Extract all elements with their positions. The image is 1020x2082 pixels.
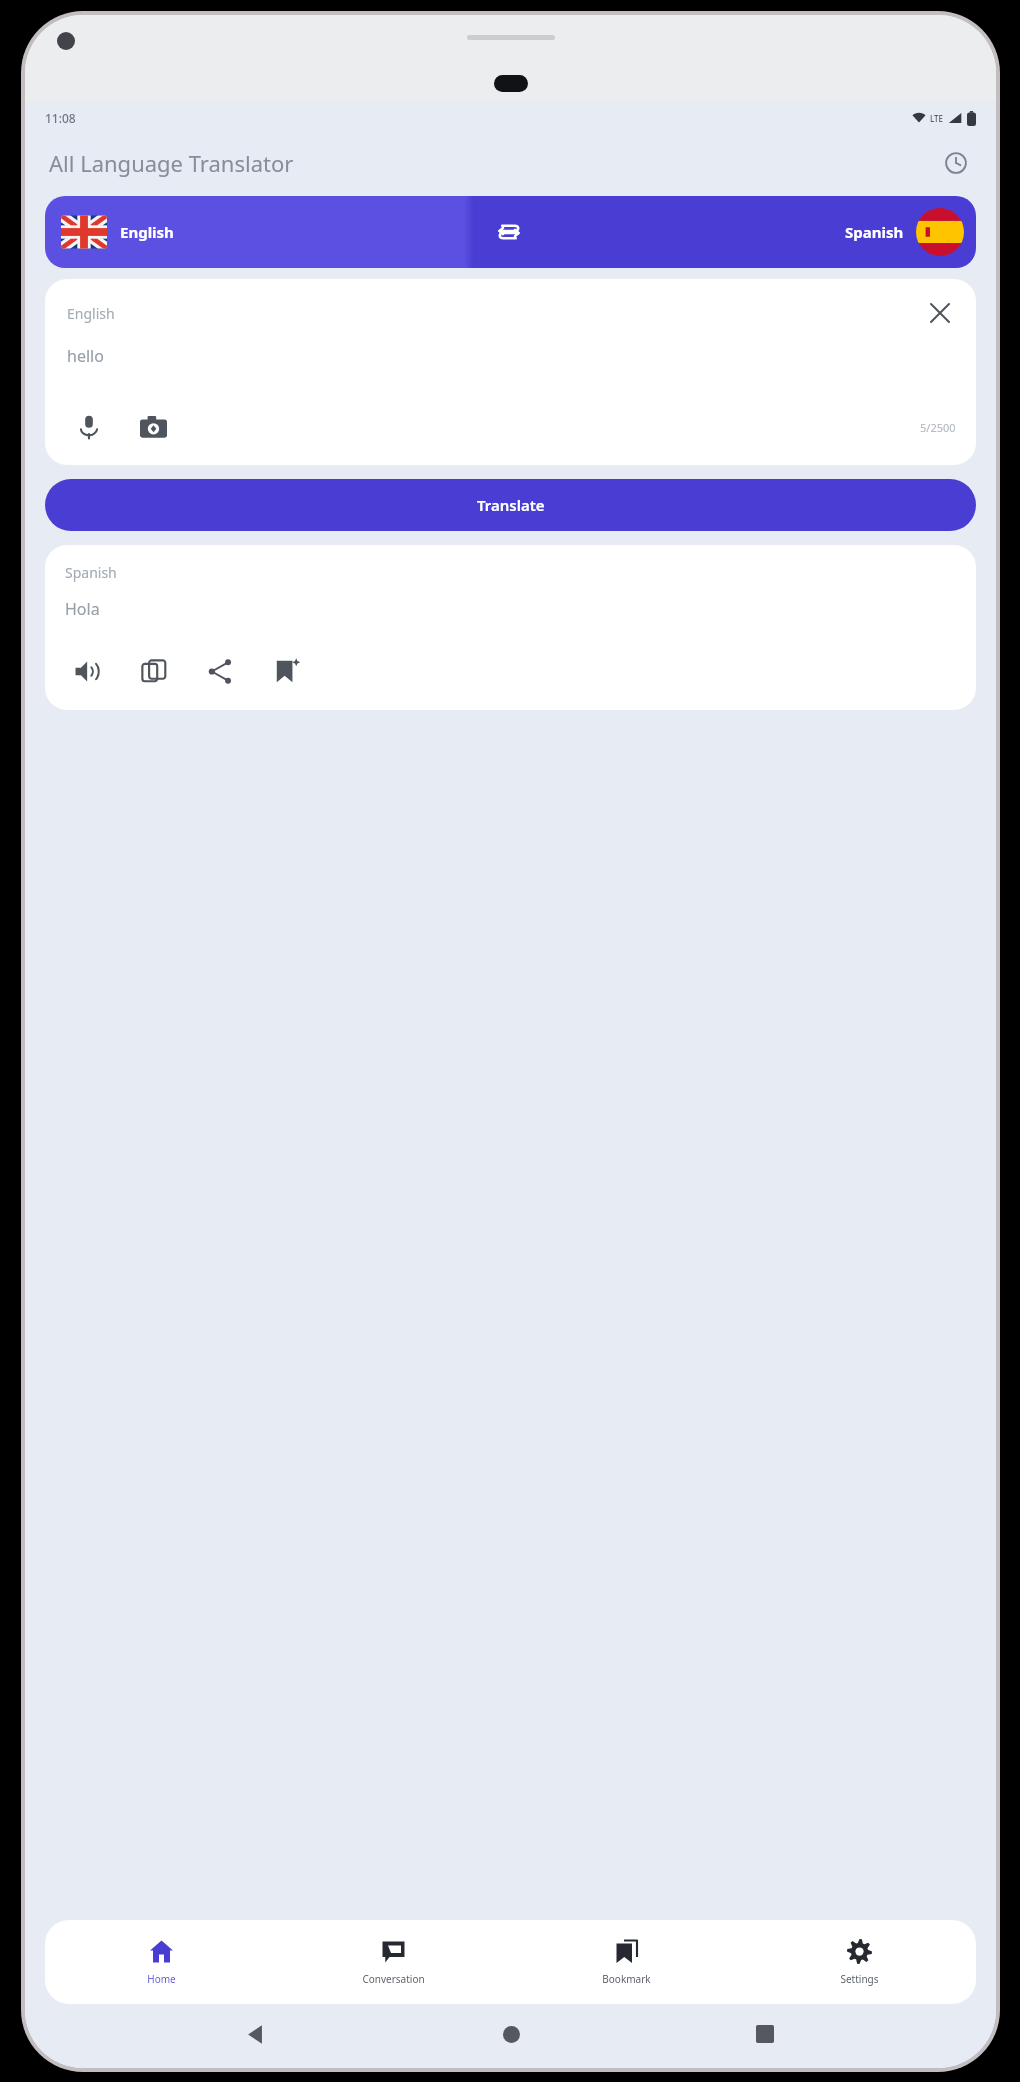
- button[interactable]: Home: [45, 1920, 277, 2004]
- button[interactable]: Copy: [131, 648, 177, 694]
- staticText: Hola: [65, 598, 100, 620]
- button[interactable]: Voice input: [67, 405, 111, 449]
- staticText: Bookmark: [602, 1972, 651, 1986]
- button[interactable]: Speak: [65, 648, 111, 694]
- button[interactable]: Camera translate: [131, 405, 175, 449]
- staticText: Settings: [840, 1972, 879, 1986]
- staticText: Conversation: [362, 1972, 425, 1986]
- button[interactable]: Translate: [45, 479, 976, 531]
- staticText: English: [120, 222, 174, 242]
- staticText: LTE: [930, 113, 944, 124]
- button[interactable]: Clear text: [924, 297, 956, 329]
- staticText: Spanish: [65, 563, 117, 582]
- button[interactable]: English: [45, 196, 976, 268]
- button[interactable]: Bookmark: [510, 1920, 743, 2004]
- staticText: English: [67, 304, 115, 323]
- button[interactable]: Spanish: [45, 545, 976, 710]
- button[interactable]: History: [938, 145, 974, 181]
- button[interactable]: Conversation: [277, 1920, 510, 2004]
- staticText: Spanish: [845, 222, 904, 242]
- button[interactable]: Settings: [743, 1920, 976, 2004]
- staticText: Home: [147, 1972, 176, 1986]
- button[interactable]: Swap languages: [488, 211, 530, 253]
- staticText: 11:08: [45, 110, 76, 126]
- staticText: hello: [67, 345, 104, 367]
- button[interactable]: Share: [197, 648, 243, 694]
- button[interactable]: Home: [488, 2011, 534, 2057]
- button[interactable]: Back: [233, 2011, 279, 2057]
- staticText: All Language Translator: [49, 148, 294, 178]
- staticText: Translate: [477, 495, 545, 515]
- button[interactable]: Recents: [742, 2011, 788, 2057]
- button[interactable]: Bookmark: [263, 648, 309, 694]
- button[interactable]: English: [45, 279, 976, 465]
- staticText: 5/2500: [920, 420, 956, 435]
